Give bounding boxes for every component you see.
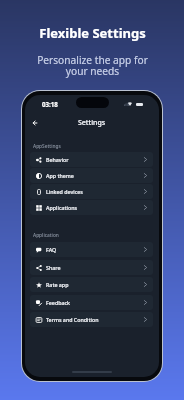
button[interactable]: FAQ <box>30 242 153 257</box>
button[interactable]: Linked devices <box>30 184 153 199</box>
staticText: Personalize the app for your needs <box>37 53 148 78</box>
staticText: Applications <box>46 204 78 211</box>
button[interactable]: Feedback <box>30 295 153 310</box>
staticText: Terms and Condition <box>46 316 99 323</box>
button[interactable]: Share <box>30 260 153 275</box>
staticText: AppSettings <box>33 143 61 150</box>
button[interactable]: Terms and Condition <box>30 312 153 327</box>
staticText: App theme <box>46 172 74 179</box>
button[interactable]: Applications <box>30 200 153 215</box>
staticText: FAQ <box>46 246 57 253</box>
staticText: Rate app <box>46 281 69 288</box>
button[interactable]: App theme <box>30 168 153 183</box>
staticText: Behavior <box>46 156 69 163</box>
staticText: Linked devices <box>46 188 83 195</box>
staticText: Flexible Settings <box>39 24 146 42</box>
button[interactable]: Back <box>28 116 41 129</box>
staticText: Application <box>33 232 59 239</box>
button[interactable]: Behavior <box>30 152 153 167</box>
staticText: Settings <box>78 118 106 128</box>
staticText: Share <box>46 264 61 271</box>
staticText: Feedback <box>46 299 71 306</box>
staticText: 03:18 <box>42 100 58 108</box>
button[interactable]: Rate app <box>30 277 153 292</box>
